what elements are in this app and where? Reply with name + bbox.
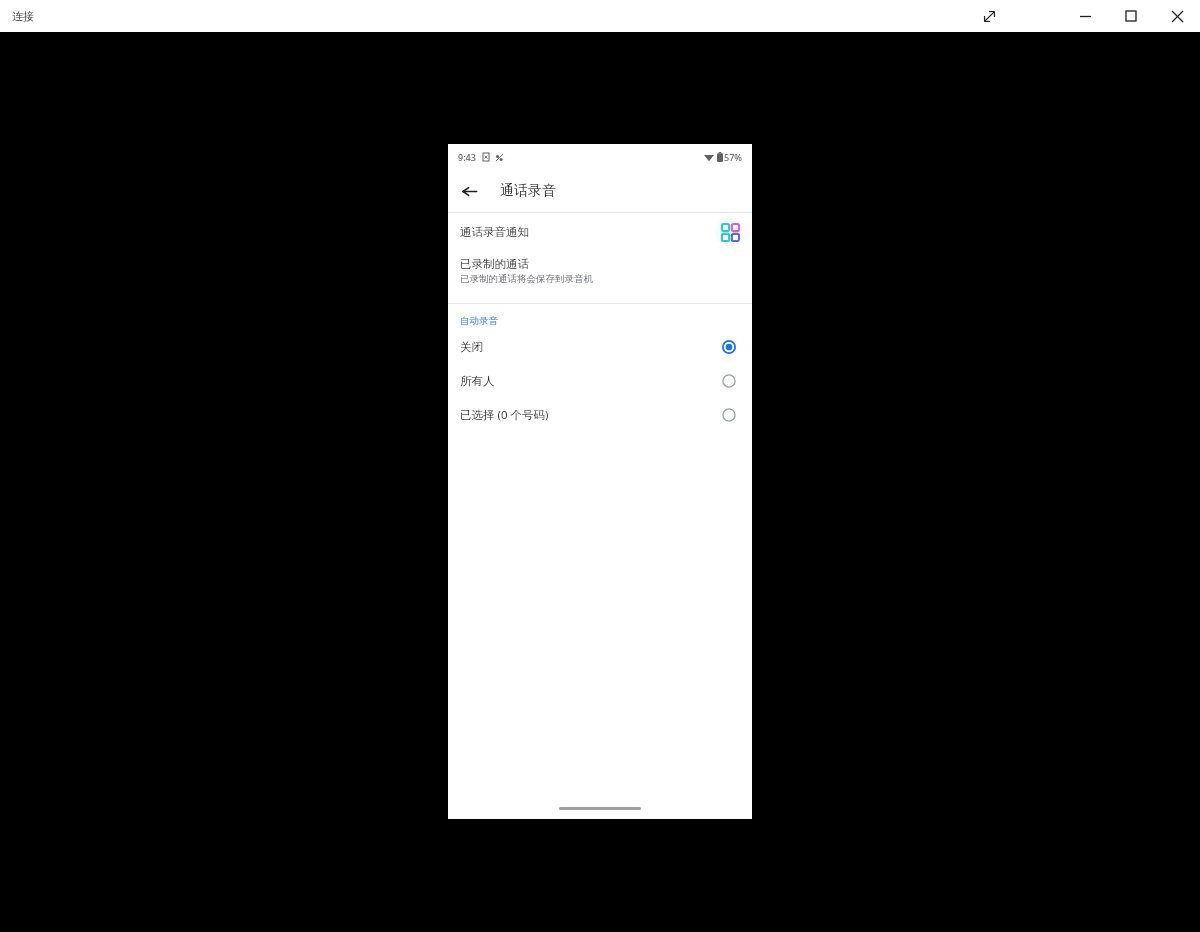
staticText: 已录制的通话将会保存到录音机 [460,273,593,285]
staticText: 连接 [12,9,34,23]
button[interactable]: Expand [966,0,1012,32]
staticText: 关闭 [460,340,483,354]
button[interactable]: Maximize [1108,0,1154,32]
staticText: 自动录音 [460,315,498,327]
button[interactable]: 关闭 [448,330,752,364]
button[interactable]: 通话录音通知 [448,213,752,251]
button[interactable]: Back [448,170,490,212]
button[interactable]: 已录制的通话 [448,251,752,295]
button[interactable]: Minimize [1062,0,1108,32]
staticText: 9:43 [458,151,476,163]
staticText: 通话录音 [500,182,556,200]
staticText: 57% [724,151,742,163]
staticText: 已选择 (0 个号码) [460,407,549,423]
button[interactable]: 所有人 [448,364,752,398]
button[interactable]: 已选择 (0 个号码) [448,398,752,432]
staticText: 已录制的通话 [460,257,529,271]
staticText: 所有人 [460,374,495,388]
staticText: 通话录音通知 [460,225,529,239]
button[interactable]: Close [1154,0,1200,32]
